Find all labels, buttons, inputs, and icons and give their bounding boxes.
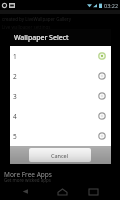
staticText: 5	[13, 132, 17, 141]
button[interactable]: 5	[10, 126, 111, 146]
button[interactable]: Home	[49, 183, 75, 200]
staticText: 1	[13, 52, 17, 61]
staticText: Live wallpaper settings	[2, 24, 51, 30]
staticText: Get more wicked apps	[4, 177, 51, 183]
staticText: 03:22	[104, 2, 119, 9]
staticText: created by LiveWallpaper Gallery	[2, 16, 71, 22]
staticText: Cancel	[51, 152, 69, 159]
button[interactable]: Recent apps	[80, 183, 106, 200]
button[interactable]: 2	[10, 66, 111, 86]
staticText: 4	[13, 112, 17, 121]
staticText: 3	[13, 92, 17, 101]
staticText: Wallpaper Select	[14, 33, 69, 43]
staticText: More Free Apps	[4, 170, 52, 179]
button[interactable]: 4	[10, 106, 111, 126]
button[interactable]: 3	[10, 86, 111, 106]
button[interactable]: Back	[12, 183, 38, 200]
staticText: 2	[13, 72, 17, 81]
button[interactable]: Cancel	[29, 148, 91, 162]
button[interactable]: 1	[10, 46, 111, 66]
